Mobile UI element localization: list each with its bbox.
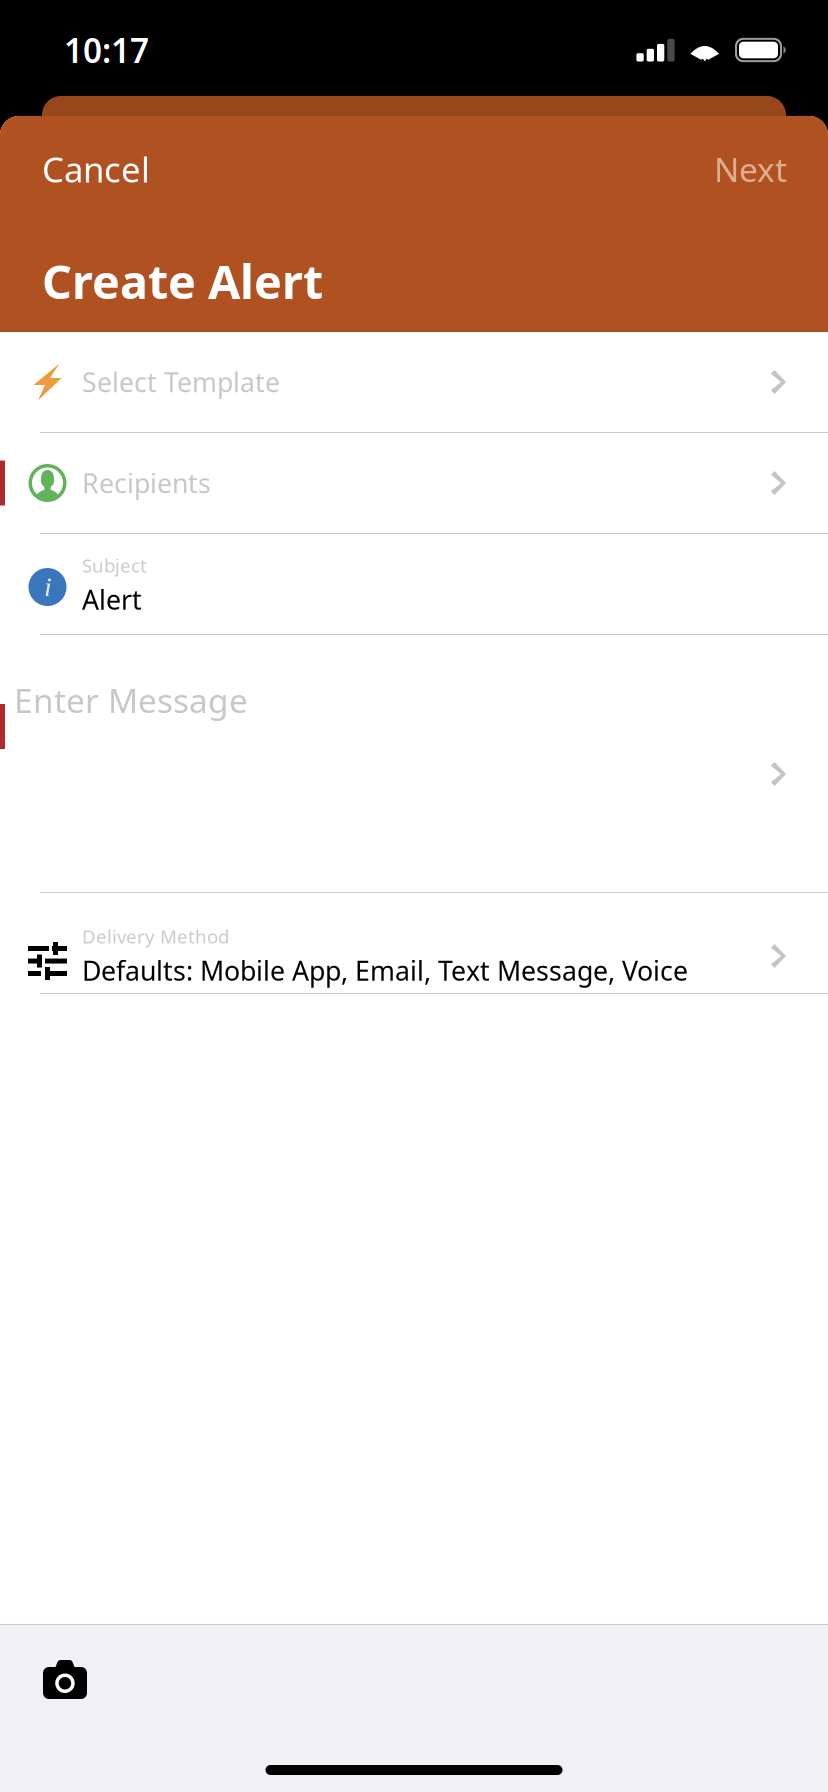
staticText: Recipients <box>82 465 211 501</box>
button[interactable]: Recipients <box>0 433 828 533</box>
staticText: Next <box>714 147 787 191</box>
staticText: Select Template <box>82 364 280 400</box>
staticText: Delivery Method <box>82 924 229 949</box>
button[interactable]: Cancel <box>0 116 180 212</box>
staticText: i <box>44 571 52 602</box>
staticText: Cancel <box>42 146 150 192</box>
button[interactable]: Camera <box>0 1625 107 1719</box>
button[interactable]: Next <box>684 117 828 211</box>
button[interactable]: Select Template <box>0 332 828 432</box>
staticText: Enter Message <box>14 678 248 722</box>
staticText: 10:17 <box>64 28 149 72</box>
button[interactable]: i <box>0 534 828 634</box>
button[interactable]: Delivery Method <box>0 893 828 993</box>
staticText: Create Alert <box>42 250 323 312</box>
staticText: Subject <box>82 553 147 578</box>
staticText: Defaults: Mobile App, Email, Text Messag… <box>82 953 688 988</box>
button[interactable]: Enter Message <box>0 635 828 892</box>
staticText: Alert <box>82 582 142 617</box>
